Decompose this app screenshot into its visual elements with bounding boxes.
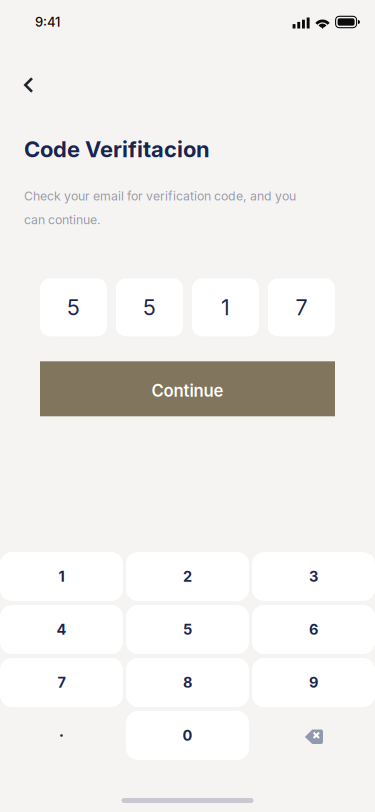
staticText: 3 [309,568,318,585]
staticText: 2 [183,568,192,585]
staticText: 6 [309,621,318,638]
button[interactable]: 1 [192,278,259,336]
staticText: 5 [67,294,80,320]
button[interactable]: 4 [0,605,123,654]
button[interactable]: 3 [252,552,375,601]
button[interactable]: Delete [252,711,375,760]
button[interactable]: 7 [268,278,335,336]
staticText: Code Verifitacion [24,136,210,163]
button[interactable]: Continue [40,361,335,416]
button[interactable]: 5 [116,278,183,336]
staticText: can continue. [24,212,101,227]
staticText: 7 [57,674,65,691]
staticText: 0 [182,727,192,744]
button[interactable]: 5 [40,278,107,336]
button[interactable]: Decimal point [0,711,123,760]
staticText: Continue [151,381,223,401]
button[interactable]: 6 [252,605,375,654]
staticText: Check your email for verification code, … [24,189,296,203]
staticText: 1 [221,294,230,320]
button[interactable]: 8 [126,658,249,707]
button[interactable]: 2 [126,552,249,601]
button[interactable]: Back [24,68,58,102]
button[interactable]: 7 [0,658,123,707]
staticText: 5 [183,621,192,638]
button[interactable]: 0 [126,711,249,760]
staticText: 5 [143,294,156,320]
button[interactable]: 5 [126,605,249,654]
staticText: 7 [295,294,307,320]
button[interactable]: 1 [0,552,123,601]
staticText: 9:41 [35,14,60,30]
staticText: 9 [309,674,318,691]
staticText: 4 [56,621,66,638]
staticText: 8 [183,674,192,691]
button[interactable]: 9 [252,658,375,707]
staticText: 1 [58,568,64,585]
